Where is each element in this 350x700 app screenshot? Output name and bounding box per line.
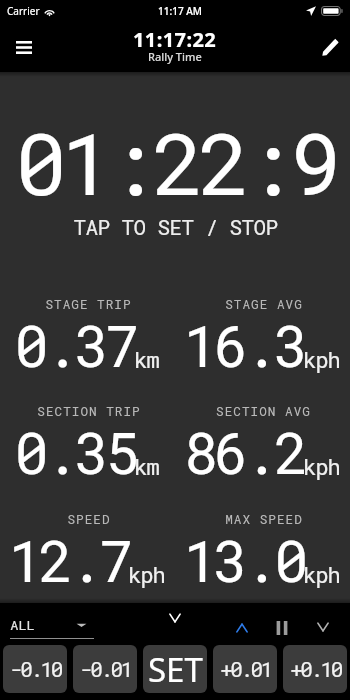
staticText: +0.01 [220,655,271,683]
staticText: 11:17:22 [133,26,217,53]
button[interactable]: +0.10 [283,645,347,693]
button[interactable]: Collapse panel [160,603,190,633]
staticText: kph [303,345,340,374]
staticText: kph [303,452,340,481]
button[interactable]: SECTION AVG [175,403,350,495]
staticText: kph [303,560,340,589]
button[interactable]: SECTION TRIP [0,403,175,495]
button[interactable]: -0.01 [73,645,137,693]
button[interactable]: Filter ALL [10,616,94,639]
staticText: SET [148,647,203,692]
staticText: 12.7 [8,522,130,597]
staticText: +0.10 [290,655,341,683]
staticText: kph [128,560,165,589]
staticText: SECTION AVG [216,403,311,420]
button[interactable]: SET [143,645,207,693]
staticText: TAP TO SET / STOP [73,213,278,241]
staticText: 0.37 [14,307,136,382]
staticText: SECTION TRIP [37,403,141,420]
button[interactable]: MAX SPEED [175,511,350,603]
staticText: -0.10 [10,655,61,683]
staticText: Rally Time [148,49,202,64]
staticText: Carrier [7,4,40,18]
button[interactable]: 01:22:9 [0,72,350,247]
button[interactable]: Menu [1,24,47,70]
button[interactable]: Pause [267,613,297,643]
button[interactable]: Expand panel [227,613,257,643]
staticText: 13.0 [183,522,305,597]
staticText: km [134,345,159,374]
staticText: ALL [10,616,35,634]
staticText: 01:22:9 [15,105,336,218]
button[interactable]: More options [308,612,338,642]
staticText: STAGE AVG [225,296,303,313]
button[interactable]: STAGE TRIP [0,296,175,388]
staticText: 11:17 AM [158,4,202,18]
staticText: -0.01 [80,655,131,683]
staticText: SPEED [67,511,111,528]
button[interactable]: STAGE AVG [175,296,350,388]
staticText: 0.35 [14,414,136,489]
button[interactable]: +0.01 [213,645,277,693]
button[interactable]: SPEED [0,511,175,603]
staticText: km [134,452,159,481]
button[interactable]: -0.10 [3,645,67,693]
staticText: 86.2 [183,414,305,489]
staticText: STAGE TRIP [45,296,132,313]
staticText: 16.3 [183,307,305,382]
button[interactable]: Edit [307,24,350,70]
staticText: MAX SPEED [225,511,303,528]
